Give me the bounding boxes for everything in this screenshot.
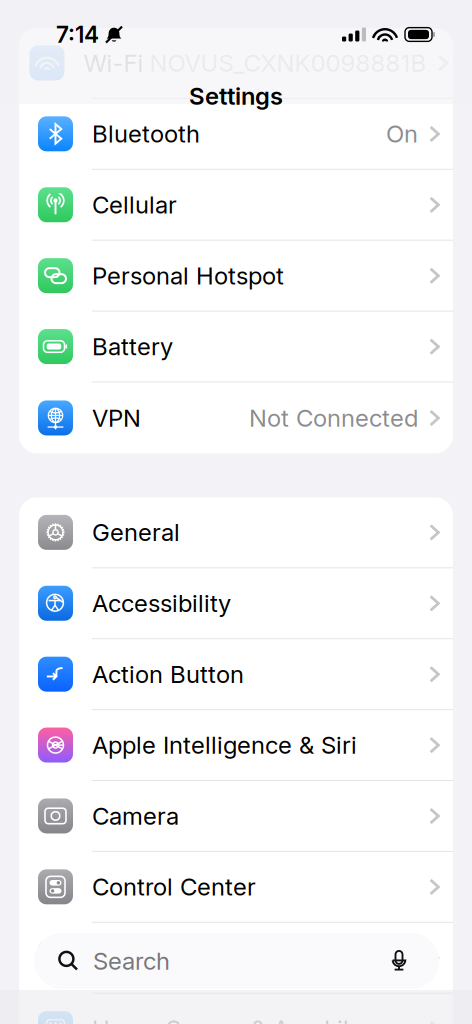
button[interactable]: Control Center xyxy=(19,852,453,923)
staticText: Personal Hotspot xyxy=(92,261,284,290)
button[interactable]: Accessibility xyxy=(19,568,453,639)
staticText: Camera xyxy=(92,801,179,830)
staticText: Accessibility xyxy=(92,589,231,618)
staticText: Cellular xyxy=(92,190,177,219)
button[interactable]: VPN xyxy=(19,382,453,453)
staticText: Not Connected xyxy=(249,403,418,432)
staticText: Wi-Fi xyxy=(83,48,143,77)
staticText: Action Button xyxy=(92,660,244,689)
button[interactable]: Personal Hotspot xyxy=(19,241,453,312)
button[interactable]: Camera xyxy=(19,781,453,852)
staticText: Bluetooth xyxy=(92,119,200,148)
button[interactable]: Home Screen & App Library xyxy=(19,994,453,1024)
staticText: Search xyxy=(93,946,170,975)
button[interactable]: Wi-Fi xyxy=(19,28,453,99)
staticText: Control Center xyxy=(92,872,256,901)
staticText: Apple Intelligence & Siri xyxy=(92,730,357,759)
staticText: Home Screen & App Library xyxy=(92,1014,401,1024)
button[interactable]: General xyxy=(19,497,453,568)
button[interactable]: Bluetooth xyxy=(19,99,453,170)
staticText: General xyxy=(92,518,180,547)
button[interactable]: Apple Intelligence & Siri xyxy=(19,710,453,781)
button[interactable]: Search xyxy=(34,933,439,989)
staticText: On xyxy=(386,119,418,148)
staticText: Settings xyxy=(189,81,283,110)
button[interactable]: Display & Brightness xyxy=(19,923,453,994)
staticText: Display & Brightness xyxy=(92,943,321,972)
button[interactable]: Action Button xyxy=(19,639,453,710)
staticText: NOVUS_CXNK0098881B xyxy=(149,48,426,77)
button[interactable]: Battery xyxy=(19,312,453,382)
staticText: Battery xyxy=(92,332,173,361)
button[interactable]: Cellular xyxy=(19,170,453,241)
staticText: VPN xyxy=(92,403,141,432)
staticText: 7:14 xyxy=(56,21,99,48)
